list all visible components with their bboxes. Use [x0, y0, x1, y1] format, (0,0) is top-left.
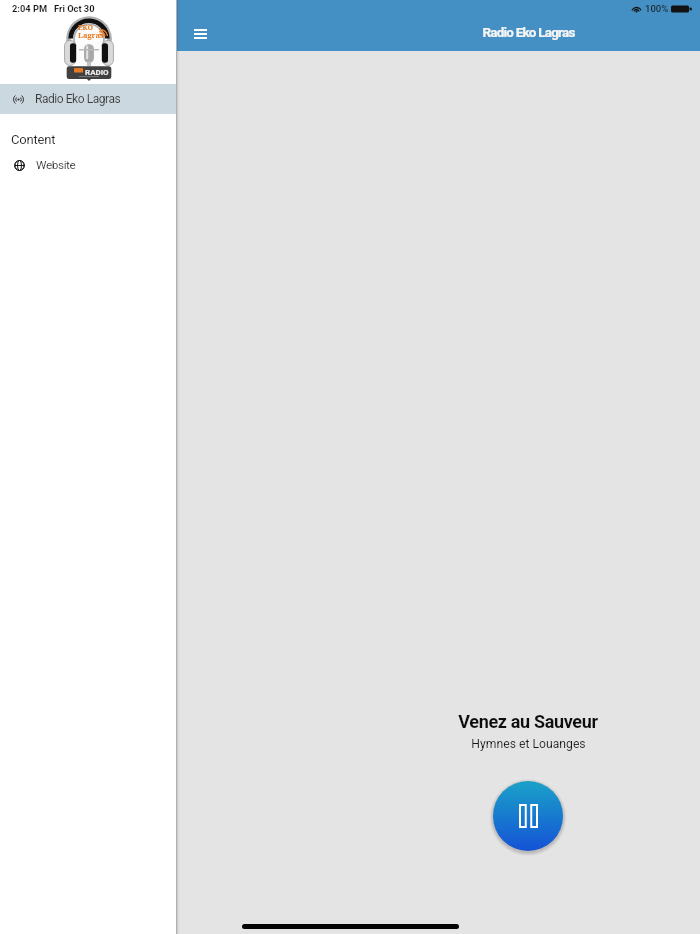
- button[interactable]: Open navigation drawer: [185, 18, 216, 49]
- staticText: Website: [36, 158, 76, 172]
- button[interactable]: Pause: [493, 781, 563, 851]
- staticText: Radio Eko Lagras: [35, 92, 121, 106]
- staticText: 100%: [645, 3, 669, 14]
- button[interactable]: Radio Eko Lagras: [0, 84, 177, 114]
- staticText: Content: [11, 132, 56, 147]
- staticText: Radio Eko Lagras: [482, 24, 575, 40]
- staticText: RADIO: [85, 68, 109, 77]
- staticText: Hymnes et Louanges: [471, 737, 586, 751]
- staticText: Venez au Sauveur: [458, 711, 598, 732]
- button[interactable]: Website: [0, 153, 177, 177]
- staticText: Fri Oct 30: [54, 3, 95, 14]
- staticText: 2:04 PM: [12, 3, 48, 14]
- staticText: EKO: [78, 23, 94, 33]
- staticText: Lagras: [78, 30, 104, 40]
